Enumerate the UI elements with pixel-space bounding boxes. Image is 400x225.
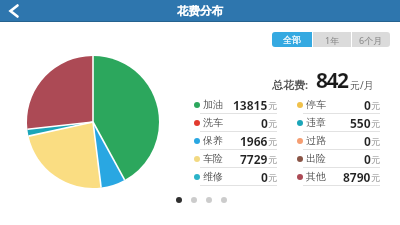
button[interactable]: 停车 xyxy=(296,96,380,114)
staticText: 违章 xyxy=(306,116,326,129)
staticText: 停车 xyxy=(306,98,326,111)
button[interactable]: 洗车 xyxy=(193,114,277,132)
staticText: 元 xyxy=(268,154,277,165)
staticText: 全部 xyxy=(283,34,301,45)
staticText: 0 xyxy=(261,169,268,185)
staticText: 0 xyxy=(364,151,371,167)
button[interactable]: 其他 xyxy=(296,168,380,186)
staticText: 元 xyxy=(371,136,380,147)
button[interactable]: 出险 xyxy=(296,150,380,168)
staticText: 元 xyxy=(268,100,277,111)
staticText: 1年 xyxy=(325,34,340,46)
staticText: 洗车 xyxy=(203,116,223,129)
staticText: 总花费: xyxy=(272,77,309,92)
button[interactable]: 1年 xyxy=(313,32,351,47)
staticText: 8790 xyxy=(343,169,371,185)
staticText: 6个月 xyxy=(359,34,383,46)
staticText: 其他 xyxy=(306,170,326,183)
staticText: 0 xyxy=(364,97,371,113)
staticText: 过路 xyxy=(306,134,326,147)
staticText: 元 xyxy=(371,172,380,183)
button[interactable]: 保养 xyxy=(193,132,277,150)
button[interactable]: 车险 xyxy=(193,150,277,168)
button[interactable]: 违章 xyxy=(296,114,380,132)
staticText: 0 xyxy=(261,115,268,131)
button[interactable]: 6个月 xyxy=(352,32,390,47)
staticText: 维修 xyxy=(203,170,223,183)
staticText: 元 xyxy=(268,136,277,147)
staticText: 7729 xyxy=(240,151,268,167)
button[interactable] xyxy=(0,0,30,22)
button[interactable]: 过路 xyxy=(296,132,380,150)
staticText: 元/月 xyxy=(350,78,374,92)
staticText: 0 xyxy=(364,133,371,149)
staticText: 花费分布 xyxy=(177,4,223,18)
staticText: 加油 xyxy=(203,98,223,111)
staticText: 元 xyxy=(268,172,277,183)
staticText: 车险 xyxy=(203,152,223,165)
staticText: 550 xyxy=(350,115,371,131)
staticText: 13815 xyxy=(233,97,268,113)
staticText: 元 xyxy=(371,100,380,111)
staticText: 842 xyxy=(316,66,348,95)
staticText: 1966 xyxy=(240,133,268,149)
button[interactable]: 维修 xyxy=(193,168,277,186)
staticText: 元 xyxy=(371,118,380,129)
staticText: 保养 xyxy=(203,134,223,147)
staticText: 元 xyxy=(371,154,380,165)
staticText: 出险 xyxy=(306,152,326,165)
button[interactable]: 加油 xyxy=(193,96,277,114)
staticText: 元 xyxy=(268,118,277,129)
button[interactable]: 全部 xyxy=(272,32,312,47)
